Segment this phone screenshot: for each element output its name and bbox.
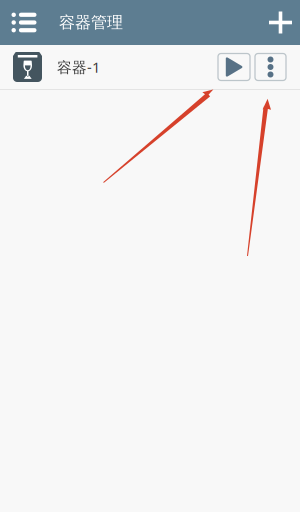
staticText: 容器管理 <box>59 13 123 32</box>
button[interactable]: Add container <box>261 0 300 45</box>
button[interactable]: Start container <box>218 53 250 80</box>
button[interactable]: More options <box>255 53 286 80</box>
staticText: 容器-1 <box>57 57 100 77</box>
button[interactable]: Menu <box>0 0 48 45</box>
button[interactable]: 容器-1 <box>0 45 300 89</box>
